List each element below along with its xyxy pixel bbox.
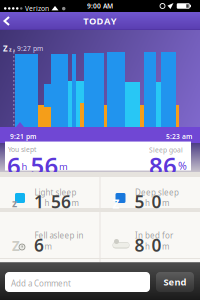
staticText: 8 [134, 233, 144, 256]
staticText: TODAY [83, 15, 117, 27]
staticText: h [21, 160, 27, 172]
button[interactable]: Z [0, 212, 99, 258]
staticText: 56 [51, 190, 71, 213]
staticText: 9:00 AM [87, 2, 113, 10]
button[interactable]: z [0, 177, 99, 208]
button[interactable]: Z [100, 177, 200, 208]
staticText: 6 [7, 150, 21, 181]
staticText: z [12, 196, 17, 210]
staticText: Fell asleep in [34, 230, 83, 241]
staticText: Z [3, 43, 8, 54]
staticText: In bed for [135, 230, 173, 241]
staticText: Deep sleep [135, 187, 179, 198]
staticText: Sleep goal [149, 146, 183, 154]
button[interactable]: Add a Comment [5, 272, 150, 292]
staticText: Light sleep [34, 187, 76, 198]
button[interactable]: In bed for [100, 212, 200, 258]
staticText: % [178, 159, 187, 173]
staticText: m [71, 197, 78, 208]
staticText: m [162, 197, 169, 208]
staticText: 6 [34, 233, 44, 256]
staticText: z [13, 48, 15, 53]
staticText: 5:23 am [166, 132, 192, 141]
button[interactable]: Send [156, 272, 194, 292]
staticText: h [44, 197, 49, 208]
staticText: m [59, 160, 68, 172]
button[interactable] [0, 14, 14, 28]
staticText: 1 [34, 190, 44, 213]
staticText: You slept [8, 145, 36, 154]
staticText: 86 [149, 150, 177, 181]
staticText: m [44, 241, 51, 252]
staticText: z [9, 46, 12, 53]
staticText: Add a Comment [11, 278, 71, 289]
staticText: m [162, 241, 169, 252]
staticText: 9:27 pm [17, 44, 43, 53]
staticText: Send [163, 276, 186, 288]
staticText: 9:21 pm [10, 132, 36, 141]
staticText: Z [12, 237, 20, 255]
staticText: 5 [134, 190, 144, 213]
staticText: 0 [151, 233, 161, 256]
staticText: h [145, 197, 150, 208]
staticText: Verizon [25, 4, 49, 13]
staticText: Z [112, 196, 119, 212]
staticText: 56 [30, 150, 58, 181]
staticText: 0 [151, 190, 161, 213]
staticText: h [145, 241, 150, 252]
